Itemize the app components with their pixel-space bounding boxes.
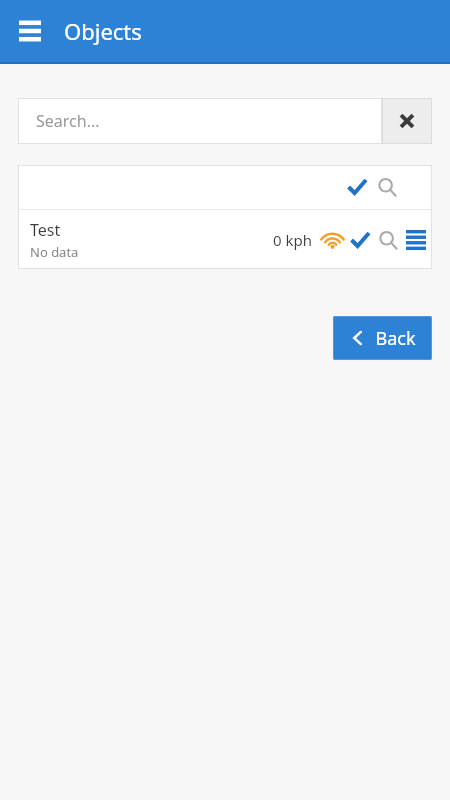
button[interactable]: More options [402, 226, 430, 254]
staticText: Objects [64, 16, 142, 46]
staticText: 0 kph [273, 230, 312, 250]
button[interactable]: Search objects [372, 172, 402, 202]
button[interactable]: Connection status [318, 226, 346, 254]
button[interactable]: Back [333, 316, 432, 360]
button[interactable]: Select all [342, 172, 372, 202]
button[interactable]: Find object [374, 226, 402, 254]
button[interactable]: Clear search [382, 98, 432, 144]
button[interactable]: Search... [18, 98, 382, 144]
button[interactable]: Selected [346, 226, 374, 254]
staticText: No data [30, 243, 79, 261]
staticText: Search... [36, 110, 100, 132]
button[interactable]: Select all [18, 165, 432, 209]
staticText: Test [30, 219, 61, 241]
button[interactable]: Test [18, 210, 432, 269]
button[interactable]: Menu [10, 11, 50, 51]
staticText: Back [375, 326, 416, 351]
